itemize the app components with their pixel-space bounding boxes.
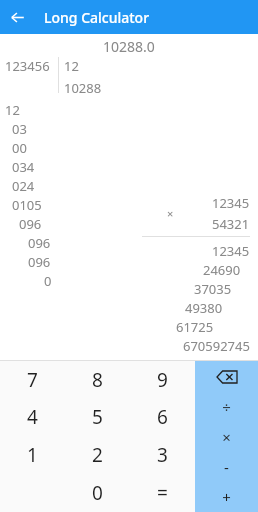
- staticText: =: [157, 480, 168, 506]
- staticText: 12: [5, 101, 20, 119]
- staticText: +: [222, 487, 231, 507]
- staticText: 034: [12, 158, 35, 176]
- button[interactable]: =: [130, 474, 195, 512]
- button[interactable]: Back: [0, 0, 34, 34]
- button[interactable]: 2: [65, 436, 130, 474]
- staticText: 7: [27, 367, 38, 393]
- button[interactable]: 6: [130, 398, 195, 436]
- staticText: -: [224, 457, 229, 477]
- staticText: 5: [92, 404, 103, 430]
- staticText: 03: [12, 120, 27, 138]
- staticText: 4: [27, 404, 38, 430]
- staticText: 0: [92, 480, 103, 506]
- staticText: ×: [222, 427, 231, 447]
- staticText: 12345: [212, 194, 250, 212]
- staticText: 10288.0: [103, 37, 155, 56]
- button[interactable]: -: [195, 452, 258, 482]
- button[interactable]: 5: [65, 398, 130, 436]
- staticText: 12345: [212, 242, 250, 260]
- staticText: 10288: [64, 79, 102, 97]
- staticText: 8: [92, 367, 103, 393]
- staticText: 24690: [203, 261, 241, 279]
- button[interactable]: 0: [65, 474, 130, 512]
- staticText: 12: [64, 57, 79, 75]
- staticText: 096: [28, 234, 51, 252]
- staticText: 9: [157, 367, 168, 393]
- button[interactable]: ×: [195, 422, 258, 452]
- button[interactable]: 4: [0, 398, 65, 436]
- staticText: 54321: [212, 215, 250, 233]
- button[interactable]: 3: [130, 436, 195, 474]
- staticText: ÷: [222, 397, 231, 417]
- button[interactable]: 9: [130, 361, 195, 398]
- staticText: ×: [167, 206, 174, 221]
- staticText: 0: [44, 272, 52, 290]
- staticText: 096: [19, 215, 42, 233]
- staticText: 024: [12, 177, 35, 195]
- staticText: 00: [12, 139, 27, 157]
- staticText: 670592745: [183, 337, 250, 355]
- staticText: 49380: [185, 299, 223, 317]
- staticText: Long Calculator: [44, 8, 150, 27]
- staticText: 6: [157, 404, 168, 430]
- button[interactable]: 8: [65, 361, 130, 398]
- staticText: 0105: [12, 196, 42, 214]
- staticText: 123456: [5, 57, 50, 75]
- button[interactable]: ÷: [195, 392, 258, 422]
- staticText: 096: [28, 253, 51, 271]
- staticText: 1: [27, 442, 38, 468]
- staticText: 3: [157, 442, 168, 468]
- staticText: 37035: [194, 280, 232, 298]
- button[interactable]: 7: [0, 361, 65, 398]
- button[interactable]: +: [195, 482, 258, 512]
- staticText: 61725: [176, 318, 214, 336]
- staticText: 2: [92, 442, 103, 468]
- button[interactable]: Backspace: [195, 361, 258, 392]
- button[interactable]: 1: [0, 436, 65, 474]
